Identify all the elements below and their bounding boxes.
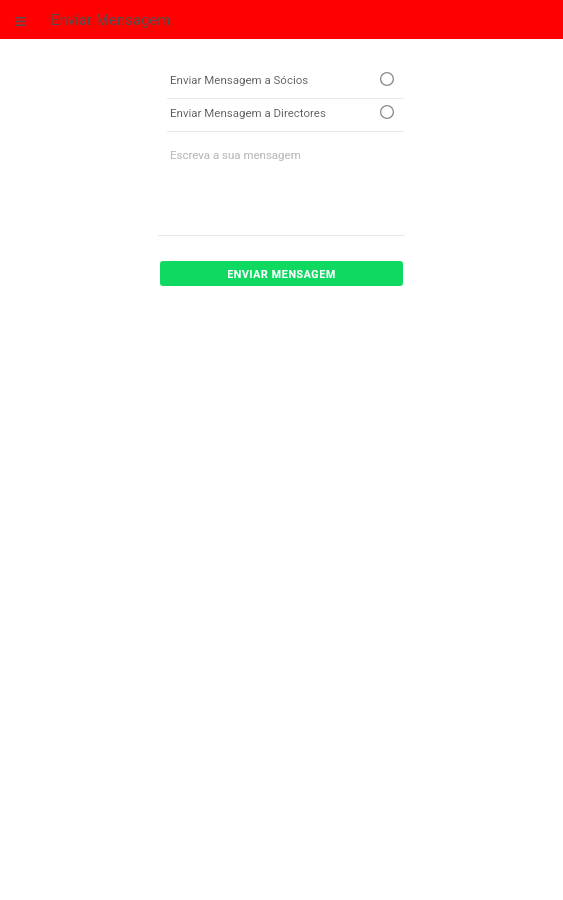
staticText: Enviar Mensagem a Directores [170, 106, 326, 119]
staticText: ENVIAR MENSAGEM [227, 268, 336, 280]
staticText: Enviar Mensagem [51, 11, 171, 29]
staticText: Escreva a sua mensagem [170, 148, 301, 161]
button[interactable]: Open navigation menu [10, 10, 30, 30]
button[interactable]: Enviar Mensagem a Sócios [158, 66, 405, 98]
button[interactable]: ENVIAR MENSAGEM [160, 261, 403, 286]
button[interactable]: Escreva a sua mensagem [158, 132, 405, 236]
button[interactable]: Enviar Mensagem a Directores [158, 99, 405, 131]
staticText: Enviar Mensagem a Sócios [170, 73, 309, 86]
